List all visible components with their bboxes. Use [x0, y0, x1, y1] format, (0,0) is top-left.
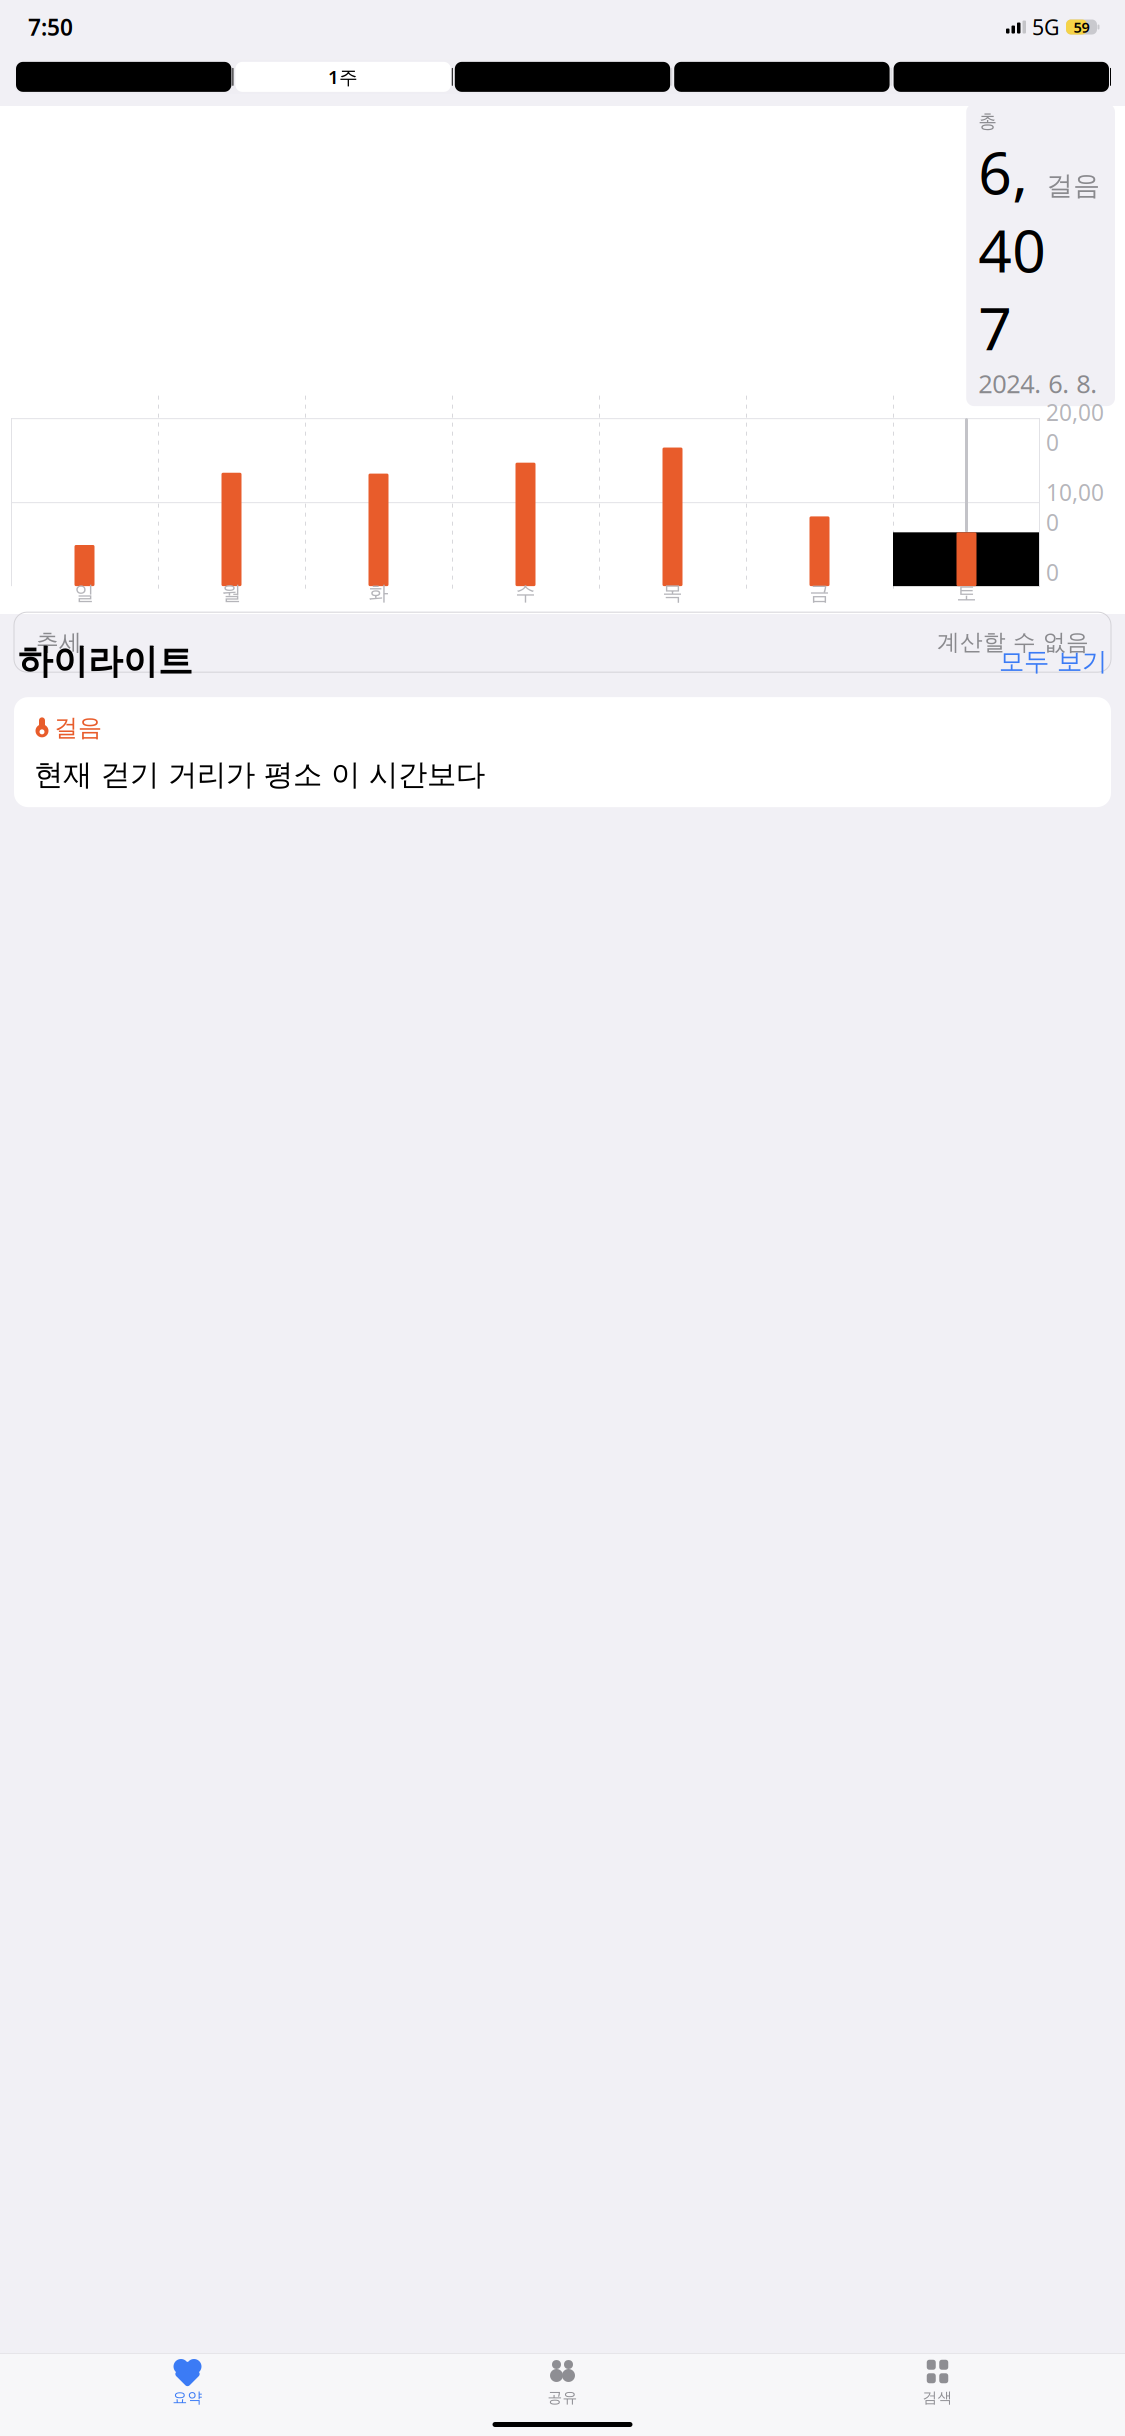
button[interactable]: 데이터 추가	[980, 57, 1107, 103]
staticText: 20,000	[1046, 397, 1104, 457]
button[interactable]: 추세	[14, 612, 1111, 672]
button[interactable]: 모두 보기	[999, 640, 1107, 683]
staticText: 토	[956, 581, 976, 605]
staticText: 수	[515, 581, 535, 605]
button[interactable]: 요약	[18, 57, 91, 103]
staticText: 검색	[922, 2388, 952, 2406]
staticText: 요약	[35, 65, 83, 95]
staticText: 일	[74, 581, 94, 605]
staticText: 59	[1073, 17, 1089, 37]
button[interactable]: 걸음	[0, 697, 1125, 807]
staticText: 걸음	[54, 713, 102, 743]
staticText: 요약	[172, 2388, 202, 2406]
staticText: 모두 보기	[999, 646, 1107, 677]
staticText: 7:50	[28, 12, 73, 42]
staticText: 10,000	[1046, 477, 1104, 537]
staticText: 월	[221, 581, 241, 605]
button[interactable]: 6개월	[672, 60, 892, 94]
staticText: 금	[809, 581, 829, 605]
button[interactable]: 공유	[375, 2350, 750, 2406]
button[interactable]: 검색	[750, 2350, 1125, 2406]
staticText: 2024. 6. 8.	[978, 366, 1097, 400]
button[interactable]: 1일	[14, 60, 233, 94]
staticText: 하이라이트	[18, 640, 193, 683]
staticText: 데이터 추가	[980, 65, 1107, 95]
button[interactable]: 요약	[0, 2350, 375, 2406]
staticText: 계산할 수 없음	[937, 628, 1089, 656]
button[interactable]: 1년	[892, 60, 1111, 94]
staticText: 화	[368, 581, 388, 605]
button[interactable]: 1개월	[453, 60, 672, 94]
staticText: 총	[978, 110, 997, 133]
staticText: 5G	[1032, 13, 1060, 41]
staticText: 1주	[328, 64, 358, 89]
staticText: 6,407	[978, 133, 1046, 366]
staticText: 걸음	[511, 65, 559, 95]
staticText: 목	[662, 581, 682, 605]
staticText: 공유	[547, 2388, 577, 2406]
staticText: 추세	[36, 628, 82, 656]
staticText: 0	[1046, 557, 1059, 587]
button[interactable]: 1주	[233, 60, 453, 94]
staticText: 걸음	[1046, 169, 1100, 202]
staticText: 현재 걷기 거리가 평소 이 시간보다	[34, 757, 485, 793]
